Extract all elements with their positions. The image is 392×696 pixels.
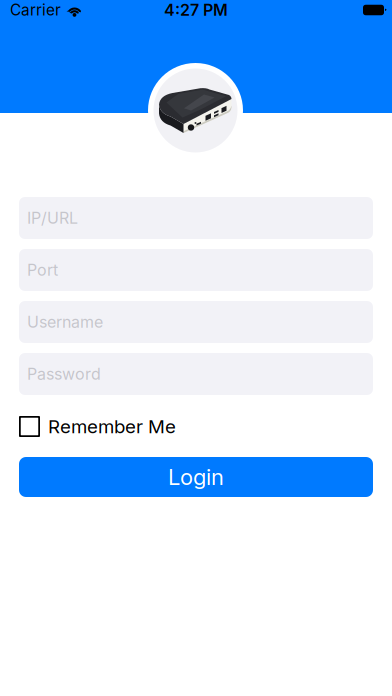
staticText: Carrier — [10, 1, 61, 19]
staticText: 4:27 PM — [164, 0, 228, 20]
button[interactable]: Login — [0, 457, 392, 497]
staticText: Login — [168, 464, 224, 490]
button[interactable]: Username — [19, 301, 373, 343]
staticText: Port — [27, 260, 58, 280]
button[interactable]: IP/URL — [19, 197, 373, 239]
button[interactable]: Port — [19, 249, 373, 291]
button[interactable]: Password — [19, 353, 373, 395]
staticText: IP/URL — [27, 208, 78, 228]
staticText: Password — [27, 364, 101, 384]
staticText: Username — [27, 312, 103, 332]
button[interactable]: Remember Me — [0, 416, 392, 437]
staticText: Remember Me — [48, 415, 176, 438]
